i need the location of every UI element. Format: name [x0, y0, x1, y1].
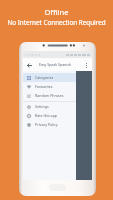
- staticText: Offline: [44, 7, 69, 17]
- staticText: Random Phrases: [35, 93, 64, 98]
- button[interactable]: More options: [82, 61, 90, 69]
- button[interactable]: Categories: [23, 73, 76, 82]
- staticText: Settings: [35, 104, 49, 109]
- staticText: No Internet Connection Required: [7, 18, 106, 27]
- staticText: Categories: [35, 75, 54, 80]
- button[interactable]: Privacy Policy: [23, 120, 76, 129]
- button[interactable]: Rate this app: [23, 111, 76, 120]
- staticText: Rate this app: [35, 113, 58, 118]
- button[interactable]: Settings: [23, 102, 76, 111]
- staticText: Easy Speak Spanish: [39, 62, 72, 67]
- button[interactable]: Random Phrases: [23, 91, 76, 100]
- button[interactable]: Favourites: [23, 82, 76, 91]
- staticText: Favourites: [35, 84, 53, 89]
- staticText: Privacy Policy: [35, 122, 58, 127]
- button[interactable]: Navigate up: [25, 61, 33, 69]
